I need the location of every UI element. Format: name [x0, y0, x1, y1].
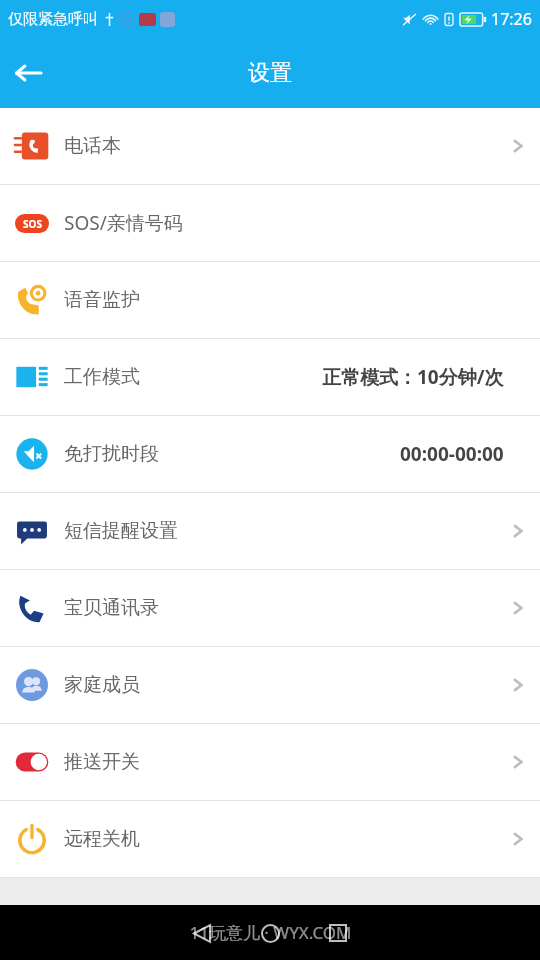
staticText: 宝贝通讯录: [64, 596, 159, 620]
button[interactable]: 电话本: [0, 108, 540, 184]
button[interactable]: 远程关机: [0, 801, 540, 877]
staticText: 远程关机: [64, 827, 140, 851]
button[interactable]: 推送开关: [0, 724, 540, 800]
staticText: 工作模式: [64, 365, 140, 389]
button[interactable]: 免打扰时段: [0, 416, 540, 492]
staticText: 正常模式：10分钟/次: [322, 364, 504, 390]
staticText: 17:26: [491, 8, 532, 30]
button[interactable]: Home: [244, 907, 296, 959]
button[interactable]: 工作模式: [0, 339, 540, 415]
button[interactable]: Back: [0, 45, 56, 101]
button[interactable]: Recents: [312, 907, 364, 959]
staticText: SOS: [23, 217, 42, 231]
staticText: 短信提醒设置: [64, 519, 178, 543]
button[interactable]: 语音监护: [0, 262, 540, 338]
staticText: 语音监护: [64, 288, 140, 312]
staticText: 推送开关: [64, 750, 140, 774]
button[interactable]: 短信提醒设置: [0, 493, 540, 569]
button[interactable]: 家庭成员: [0, 647, 540, 723]
staticText: 仅限紧急呼叫: [8, 10, 98, 29]
staticText: 11玩意儿 · WYX.COM: [189, 921, 352, 944]
staticText: 设置: [248, 59, 292, 87]
staticText: 免打扰时段: [64, 442, 159, 466]
staticText: 00:00-00:00: [400, 441, 504, 467]
staticText: 电话本: [64, 134, 121, 158]
staticText: SOS/亲情号码: [64, 210, 183, 236]
button[interactable]: 宝贝通讯录: [0, 570, 540, 646]
button[interactable]: SOS: [0, 185, 540, 261]
button[interactable]: Back: [176, 907, 228, 959]
staticText: 家庭成员: [64, 673, 140, 697]
